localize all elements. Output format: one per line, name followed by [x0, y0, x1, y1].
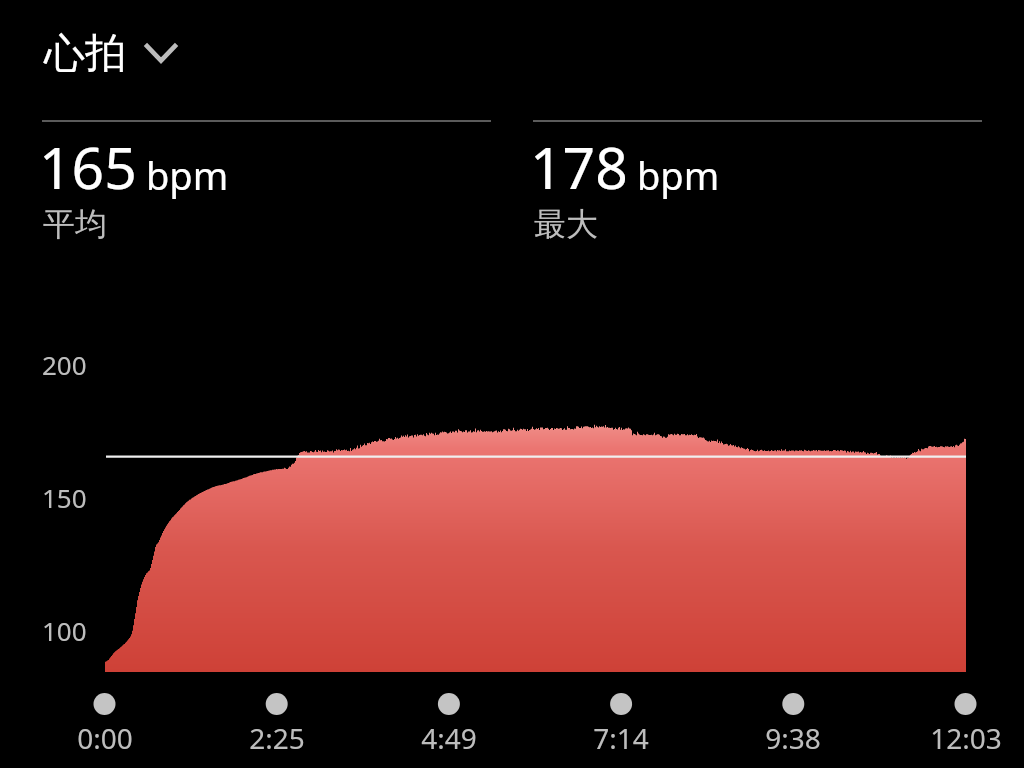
staticText: 最大 [534, 204, 598, 244]
staticText: 165 [39, 128, 137, 206]
staticText: bpm [146, 149, 229, 201]
staticText: 7:14 [561, 719, 681, 757]
staticText: 心拍 [44, 28, 126, 80]
staticText: 100 [42, 613, 87, 648]
staticText: 12:03 [906, 719, 1024, 757]
staticText: 178 [530, 128, 628, 206]
staticText: bpm [637, 149, 720, 201]
button[interactable]: 心拍, change metric [44, 28, 181, 80]
button[interactable]: 165 [39, 128, 488, 246]
button[interactable]: 178 [530, 128, 979, 246]
staticText: 150 [42, 480, 87, 515]
staticText: 2:25 [217, 719, 337, 757]
staticText: 0:00 [45, 719, 165, 757]
staticText: 平均 [43, 204, 107, 244]
staticText: 9:38 [733, 719, 853, 757]
staticText: 200 [42, 347, 87, 382]
staticText: 4:49 [389, 719, 509, 757]
